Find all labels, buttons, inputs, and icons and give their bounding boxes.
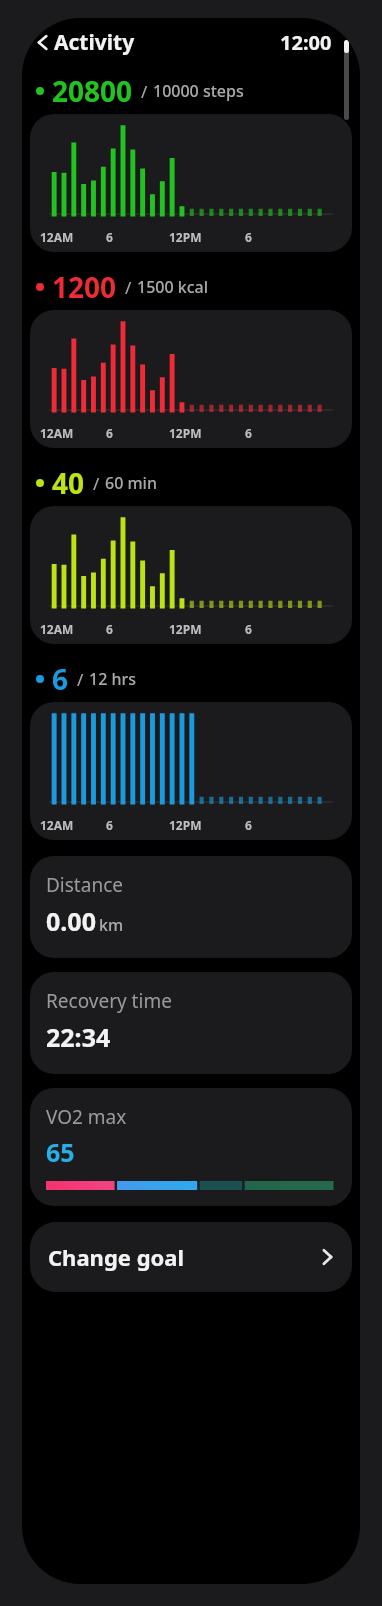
staticText: 20800 [52,72,133,110]
staticText: 12PM [169,425,202,441]
staticText: Activity [54,28,135,56]
staticText: 12AM [40,621,74,637]
staticText: 12PM [169,621,202,637]
button[interactable]: 20800 [22,70,360,114]
staticText: km [99,914,124,936]
staticText: 6 [106,229,113,245]
staticText: Change goal [48,1242,185,1272]
button[interactable]: 12AM [30,310,352,448]
staticText: 12AM [40,817,74,833]
staticText: 60 min [105,472,157,494]
staticText: VO2 max [46,1104,127,1130]
staticText: 40 [52,464,85,502]
button[interactable]: 12AM [30,114,352,252]
staticText: 12PM [169,229,202,245]
staticText: 6 [106,621,113,637]
staticText: / [77,668,84,691]
button[interactable]: VO2 max [30,1088,352,1206]
staticText: 22:34 [46,1020,111,1054]
staticText: / [141,80,148,103]
staticText: 12AM [40,425,74,441]
staticText: 10000 steps [153,80,244,102]
staticText: 6 [245,817,252,833]
button[interactable]: Recovery time [30,972,352,1074]
button[interactable]: 40 [22,462,360,506]
button[interactable]: 12AM [30,506,352,644]
staticText: 6 [245,425,252,441]
button[interactable]: 12AM [30,702,352,840]
staticText: Recovery time [46,988,172,1014]
staticText: 1200 [52,268,117,306]
staticText: 65 [46,1135,75,1169]
button[interactable]: Distance [30,856,352,958]
staticText: 6 [245,621,252,637]
staticText: 12 hrs [89,668,137,690]
staticText: 12:00 [280,29,332,56]
staticText: 6 [106,817,113,833]
button[interactable]: Change goal [30,1222,352,1292]
staticText: 6 [245,229,252,245]
staticText: 6 [106,425,113,441]
staticText: 6 [52,660,69,698]
button[interactable]: 6 [22,658,360,702]
staticText: 1500 kcal [137,276,209,298]
staticText: / [93,472,100,495]
staticText: / [125,276,132,299]
staticText: 12AM [40,229,74,245]
button[interactable]: Back to Activity [22,26,141,58]
staticText: 0.00 [46,904,96,938]
staticText: 12PM [169,817,202,833]
button[interactable]: 1200 [22,266,360,310]
staticText: Distance [46,872,123,898]
